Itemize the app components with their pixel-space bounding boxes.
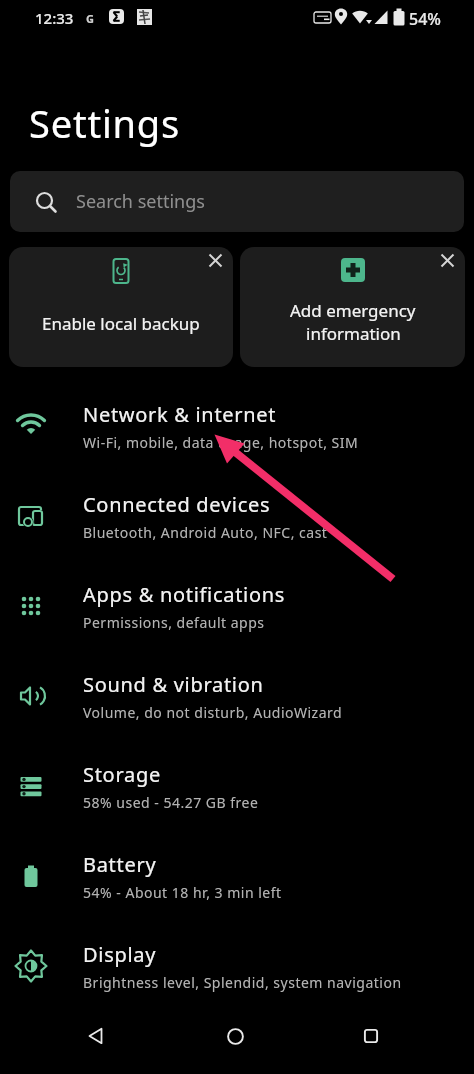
button[interactable]: Apps & notifications <box>0 561 474 651</box>
staticText: Connected devices <box>83 491 271 518</box>
staticText: Bluetooth, Android Auto, NFC, cast <box>83 523 328 542</box>
staticText: 54% <box>409 8 441 30</box>
staticText: Brightness level, Splendid, system navig… <box>83 973 402 992</box>
staticText: Sound & vibration <box>83 671 264 698</box>
staticText: Battery <box>83 851 157 878</box>
button[interactable] <box>211 1012 259 1060</box>
staticText: information <box>306 322 401 345</box>
staticText: Network & internet <box>83 401 277 428</box>
staticText: 12:33 <box>35 8 74 28</box>
button[interactable]: Search settings <box>10 171 464 232</box>
button[interactable]: Storage <box>0 741 474 831</box>
staticText: Apps & notifications <box>83 581 286 608</box>
button[interactable] <box>347 1012 395 1060</box>
staticText: Display <box>83 941 157 968</box>
button[interactable] <box>201 247 229 274</box>
staticText: 54% - About 18 hr, 3 min left <box>83 883 282 902</box>
staticText: 58% used - 54.27 GB free <box>83 793 259 812</box>
button[interactable]: Battery <box>0 831 474 921</box>
staticText: Volume, do not disturb, AudioWizard <box>83 703 343 722</box>
staticText: Settings <box>29 97 180 149</box>
button[interactable]: Add emergency <box>240 247 465 367</box>
staticText: Add emergency <box>290 299 416 322</box>
button[interactable]: Sound & vibration <box>0 651 474 741</box>
staticText: Storage <box>83 761 161 788</box>
button[interactable]: Display <box>0 921 474 1011</box>
button[interactable]: Enable local backup <box>9 247 233 367</box>
button[interactable]: Connected devices <box>0 471 474 561</box>
staticText: Wi-Fi, mobile, data usage, hotspot, SIM <box>83 433 359 452</box>
button[interactable]: Network & internet <box>0 381 474 471</box>
staticText: Search settings <box>76 189 205 214</box>
button[interactable] <box>433 247 461 274</box>
staticText: G <box>86 11 94 26</box>
button[interactable] <box>72 1012 120 1060</box>
staticText: Permissions, default apps <box>83 613 265 632</box>
staticText: Enable local backup <box>42 312 200 335</box>
